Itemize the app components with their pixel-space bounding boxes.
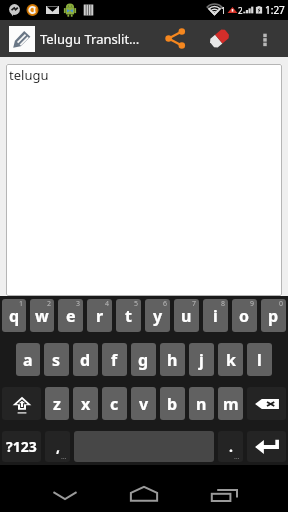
staticText: i	[213, 305, 218, 327]
button[interactable]: h	[160, 343, 185, 376]
button[interactable]: 1	[2, 299, 26, 332]
staticText: 1	[221, 5, 226, 16]
staticText: 2	[47, 299, 52, 309]
button[interactable]: 2	[30, 299, 54, 332]
staticText: …	[234, 452, 240, 462]
button[interactable]: 6	[145, 299, 170, 332]
staticText: d	[80, 349, 91, 371]
button[interactable]: 7	[174, 299, 199, 332]
staticText: f	[111, 349, 118, 371]
button[interactable]: v	[131, 387, 156, 420]
button[interactable]: g	[131, 343, 156, 376]
staticText: b	[167, 393, 178, 415]
button[interactable]: Shift	[2, 387, 41, 420]
staticText: telugu	[9, 66, 49, 84]
button[interactable]: .	[218, 431, 243, 462]
button[interactable]: 9	[232, 299, 257, 332]
staticText: s	[52, 349, 61, 371]
button[interactable]: Enter	[247, 431, 286, 462]
staticText: l	[257, 349, 262, 371]
staticText: …	[61, 452, 67, 462]
button[interactable]: c	[102, 387, 127, 420]
staticText: t	[125, 305, 132, 327]
button[interactable]: Recents	[177, 471, 273, 512]
staticText: u	[181, 305, 192, 327]
staticText: ,	[56, 437, 60, 456]
staticText: e	[66, 305, 76, 327]
staticText: 8	[221, 299, 226, 309]
staticText: v	[139, 393, 149, 415]
button[interactable]: k	[218, 343, 243, 376]
button[interactable]: j	[189, 343, 214, 376]
staticText: z	[53, 393, 61, 415]
staticText: p	[268, 305, 279, 327]
button[interactable]: Backspace	[247, 387, 286, 420]
staticText: o	[239, 305, 250, 327]
staticText: j	[199, 349, 204, 371]
staticText: Telugu Translit…	[40, 30, 140, 48]
button[interactable]: 4	[87, 299, 112, 332]
button[interactable]: Hide keyboard	[17, 471, 113, 512]
staticText: y	[153, 305, 163, 327]
button[interactable]: 0	[261, 299, 286, 332]
staticText: 6	[163, 299, 168, 309]
staticText: 1	[19, 299, 24, 309]
staticText: 3	[76, 299, 81, 309]
staticText: 0	[279, 299, 284, 309]
button[interactable]: d	[73, 343, 98, 376]
staticText: c	[110, 393, 119, 415]
button[interactable]: s	[44, 343, 69, 376]
staticText: r	[96, 305, 104, 327]
button[interactable]: a	[16, 343, 40, 376]
staticText: a	[23, 349, 33, 371]
button[interactable]: m	[218, 387, 243, 420]
staticText: w	[35, 305, 49, 327]
button[interactable]: b	[160, 387, 185, 420]
staticText: 9	[250, 299, 255, 309]
button[interactable]: ,	[45, 431, 70, 462]
button[interactable]: More options	[242, 20, 288, 57]
staticText: 4	[105, 299, 110, 309]
button[interactable]: ?123	[2, 431, 41, 462]
staticText: q	[9, 305, 20, 327]
staticText: x	[81, 393, 91, 415]
button[interactable]: f	[102, 343, 127, 376]
staticText: .	[229, 437, 233, 456]
button[interactable]: l	[247, 343, 272, 376]
button[interactable]: x	[73, 387, 98, 420]
staticText: 2	[238, 5, 243, 16]
staticText: k	[226, 349, 236, 371]
button[interactable]: 5	[116, 299, 141, 332]
staticText: h	[167, 349, 178, 371]
staticText: 5	[134, 299, 139, 309]
button[interactable]: Share	[153, 20, 197, 57]
button[interactable]: Clear text	[197, 20, 242, 57]
staticText: g	[138, 349, 149, 371]
staticText: ?123	[6, 437, 37, 456]
button[interactable]: 8	[203, 299, 228, 332]
button[interactable]: Home	[96, 471, 192, 512]
staticText: 7	[192, 299, 197, 309]
staticText: 1:27	[265, 3, 285, 17]
staticText: n	[196, 393, 207, 415]
staticText: m	[223, 393, 239, 415]
button[interactable]: n	[189, 387, 214, 420]
button[interactable]: z	[45, 387, 69, 420]
button[interactable]: 3	[58, 299, 83, 332]
